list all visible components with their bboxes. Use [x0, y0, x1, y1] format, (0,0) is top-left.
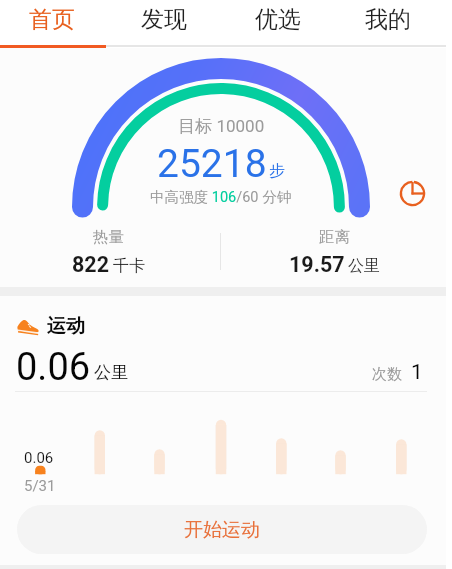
staticText: 距离 [319, 227, 350, 247]
staticText: 1 [411, 360, 423, 385]
staticText: 首页 [29, 5, 75, 34]
button[interactable]: 优选 [222, 0, 334, 48]
staticText: 822 [72, 252, 110, 277]
button[interactable]: 我的 [332, 0, 444, 48]
staticText: 25218 [157, 141, 267, 187]
staticText: 0.06 [16, 345, 91, 390]
button[interactable]: 距离 [254, 227, 414, 277]
staticText: 5/31 [24, 477, 56, 495]
staticText: 千卡 [113, 256, 145, 276]
staticText: 发现 [141, 5, 187, 34]
staticText: 我的 [365, 5, 411, 34]
staticText: 中高强度 106/60 分钟 [150, 186, 292, 206]
button[interactable]: Statistics [396, 177, 429, 210]
button[interactable]: 热量 [28, 227, 188, 277]
staticText: 公里 [94, 362, 128, 383]
button[interactable]: 首页 [0, 0, 108, 48]
button[interactable]: 运动 [17, 314, 85, 338]
staticText: 热量 [93, 227, 124, 247]
staticText: 次数 [372, 365, 402, 384]
staticText: 19.57 [289, 252, 345, 277]
staticText: 运动 [47, 314, 85, 338]
staticText: 目标 10000 [178, 114, 265, 137]
staticText: 步 [269, 161, 285, 181]
staticText: 公里 [348, 256, 380, 276]
button[interactable]: 开始运动 [17, 505, 427, 554]
staticText: 0.06 [24, 449, 54, 467]
staticText: 优选 [255, 5, 301, 34]
staticText: 开始运动 [184, 518, 260, 542]
button[interactable]: 发现 [108, 0, 220, 48]
